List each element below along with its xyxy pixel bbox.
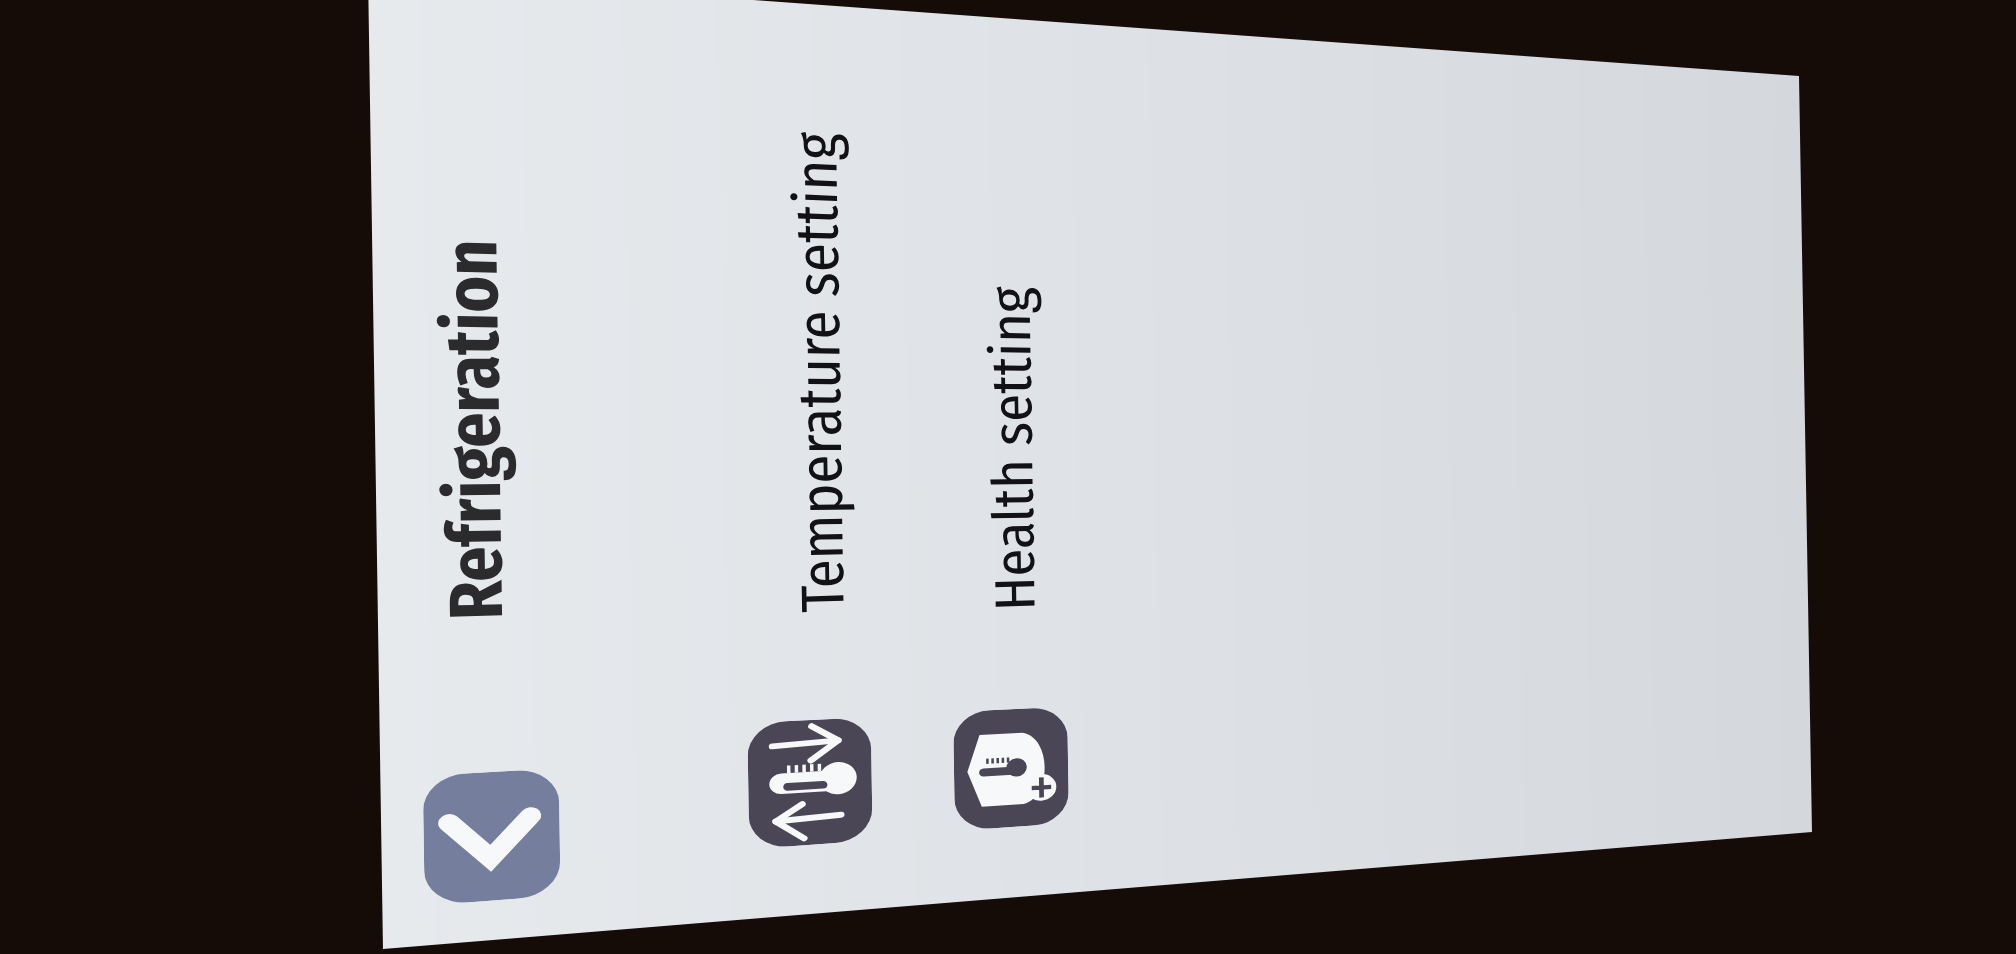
staticText: Temperature setting — [314, 101, 817, 166]
staticText: Health setting — [309, 279, 660, 344]
button[interactable]: Health setting — [0, 230, 950, 380]
button[interactable]: Temperature setting — [0, 44, 950, 194]
